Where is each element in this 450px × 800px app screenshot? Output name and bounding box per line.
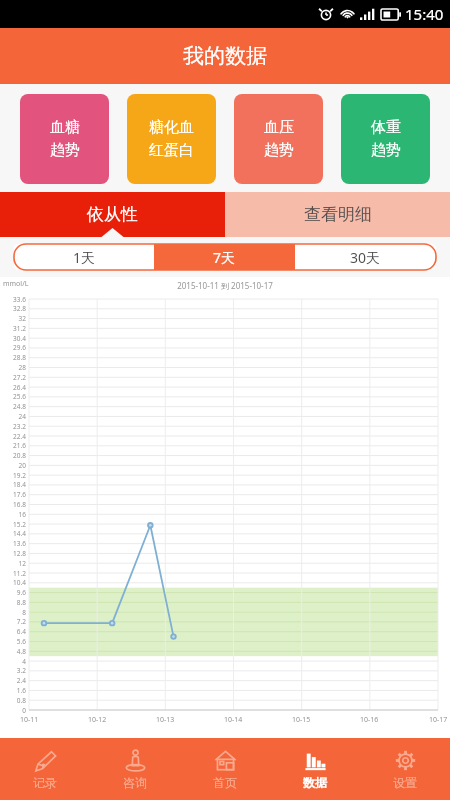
- staticText: 2.4: [16, 676, 26, 685]
- staticText: 33.6: [13, 295, 26, 304]
- staticText: 9.6: [16, 588, 26, 597]
- staticText: 首页: [213, 775, 237, 790]
- staticText: 7.2: [16, 617, 26, 626]
- staticText: 27.2: [13, 373, 26, 382]
- button[interactable]: 首页: [180, 738, 270, 800]
- staticText: 趋势: [371, 141, 401, 160]
- button[interactable]: 数据: [270, 738, 360, 800]
- staticText: 24.8: [13, 402, 26, 411]
- staticText: 14.4: [13, 529, 26, 538]
- staticText: 31.2: [13, 324, 26, 333]
- staticText: 设置: [393, 775, 417, 790]
- staticText: 25.6: [13, 392, 26, 401]
- staticText: 15.2: [13, 520, 26, 529]
- staticText: 趋势: [264, 141, 294, 160]
- staticText: 16: [18, 510, 26, 519]
- staticText: 28.8: [13, 353, 26, 362]
- staticText: 17.6: [13, 490, 26, 499]
- staticText: 血糖: [50, 118, 80, 137]
- staticText: 10-12: [88, 715, 107, 725]
- staticText: 32: [18, 314, 26, 323]
- staticText: 30.4: [13, 334, 26, 343]
- staticText: 依从性: [87, 204, 138, 225]
- button[interactable]: 30天: [295, 244, 436, 270]
- staticText: 咨询: [123, 775, 147, 790]
- staticText: 6.4: [16, 627, 26, 636]
- button[interactable]: 体重: [341, 94, 430, 184]
- button[interactable]: 1天: [14, 244, 154, 270]
- staticText: 19.2: [13, 471, 26, 480]
- staticText: 15:40: [405, 4, 444, 24]
- staticText: 12: [18, 559, 26, 568]
- staticText: 4.8: [16, 647, 26, 656]
- staticText: 24: [18, 412, 26, 421]
- staticText: 0: [22, 706, 26, 715]
- staticText: 16.8: [13, 500, 26, 509]
- staticText: 32.8: [13, 304, 26, 313]
- staticText: 数据: [303, 775, 327, 790]
- staticText: 4: [22, 657, 26, 666]
- staticText: 10-11: [20, 715, 39, 725]
- staticText: 10.4: [13, 578, 26, 587]
- staticText: 22.4: [13, 432, 26, 441]
- staticText: 糖化血: [149, 118, 194, 137]
- staticText: 血压: [264, 118, 294, 137]
- staticText: 趋势: [50, 141, 80, 160]
- button[interactable]: 记录: [0, 738, 90, 800]
- button[interactable]: 糖化血: [127, 94, 216, 184]
- staticText: 29.6: [13, 343, 26, 352]
- staticText: mmol/L: [3, 279, 29, 289]
- button[interactable]: 7天: [154, 244, 295, 270]
- staticText: 7天: [213, 248, 236, 267]
- staticText: 10-14: [224, 715, 243, 725]
- button[interactable]: 血糖: [20, 94, 109, 184]
- staticText: 8: [22, 608, 26, 617]
- staticText: 5.6: [16, 637, 26, 646]
- staticText: 18.4: [13, 480, 26, 489]
- staticText: 3.2: [16, 666, 26, 675]
- staticText: 1.6: [16, 686, 26, 695]
- button[interactable]: 依从性: [0, 192, 225, 237]
- staticText: 1天: [73, 248, 96, 267]
- staticText: 20: [18, 461, 26, 470]
- button[interactable]: 设置: [360, 738, 450, 800]
- staticText: 21.6: [13, 441, 26, 450]
- button[interactable]: 血压: [234, 94, 323, 184]
- staticText: 10-16: [360, 715, 379, 725]
- staticText: 我的数据: [183, 43, 267, 69]
- staticText: 10-13: [156, 715, 175, 725]
- staticText: 记录: [33, 775, 57, 790]
- staticText: 23.2: [13, 422, 26, 431]
- staticText: 2015-10-11 到 2015-10-17: [177, 280, 273, 291]
- staticText: 20.8: [13, 451, 26, 460]
- button[interactable]: 查看明细: [225, 192, 450, 237]
- staticText: 30天: [350, 248, 381, 267]
- staticText: 26.4: [13, 383, 26, 392]
- staticText: 11.2: [13, 569, 26, 578]
- button[interactable]: 咨询: [90, 738, 180, 800]
- staticText: 查看明细: [304, 204, 372, 225]
- staticText: 8.8: [16, 598, 26, 607]
- staticText: 体重: [371, 118, 401, 137]
- staticText: 10-15: [292, 715, 311, 725]
- staticText: 13.6: [13, 539, 26, 548]
- staticText: 28: [18, 363, 26, 372]
- staticText: 红蛋白: [149, 141, 194, 160]
- staticText: 0.8: [16, 696, 26, 705]
- staticText: 10-17: [429, 715, 448, 725]
- staticText: 12.8: [13, 549, 26, 558]
